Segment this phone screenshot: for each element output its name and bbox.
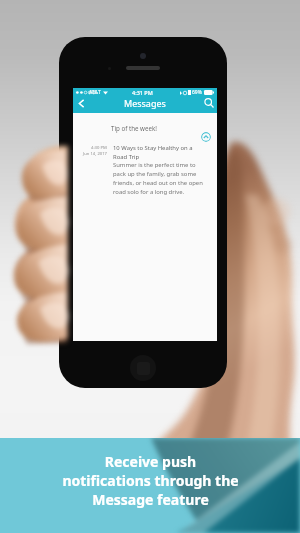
- staticText: Receive push notifications through the M…: [62, 452, 239, 509]
- button[interactable]: Search: [201, 95, 217, 111]
- staticText: 4:31 PM: [132, 89, 153, 96]
- staticText: Summer is the perfect time to pack up th…: [113, 161, 205, 196]
- staticText: Jun 14, 2017: [83, 151, 107, 157]
- staticText: Tip of the week!: [111, 124, 157, 132]
- staticText: AT&T: [89, 89, 101, 96]
- button[interactable]: Collapse: [201, 132, 211, 142]
- staticText: Messages: [124, 97, 166, 109]
- staticText: 69%: [192, 89, 202, 96]
- staticText: 10 Ways to Stay Healthy on a Road Trip: [113, 144, 193, 161]
- staticText: 4:30 PM: [91, 145, 107, 151]
- button[interactable]: Back: [73, 95, 89, 111]
